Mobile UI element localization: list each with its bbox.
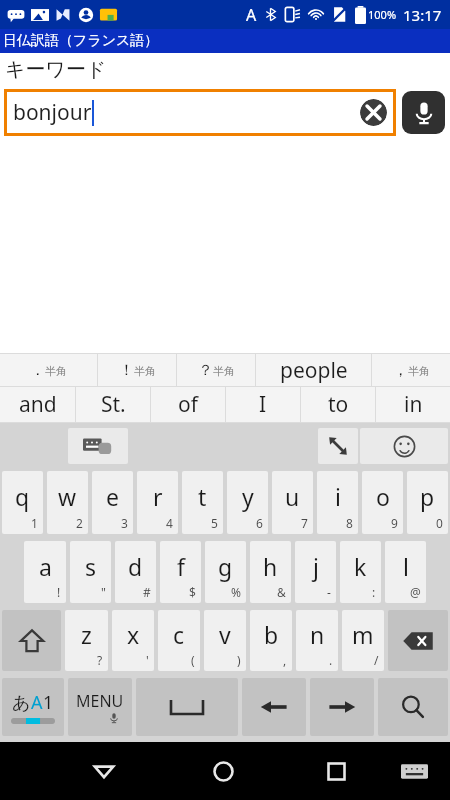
button[interactable]: h: [250, 541, 291, 603]
button[interactable]: i: [317, 471, 358, 534]
button[interactable]: and: [0, 387, 75, 422]
button[interactable]: q: [2, 471, 43, 534]
button[interactable]: s: [70, 541, 111, 603]
staticText: ！: [119, 361, 134, 380]
button[interactable]: Show keyboard: [394, 751, 434, 791]
staticText: u: [285, 481, 300, 512]
button[interactable]: e: [92, 471, 133, 534]
button[interactable]: o: [362, 471, 403, 534]
staticText: キーワード: [5, 57, 107, 82]
staticText: ，: [393, 361, 408, 380]
button[interactable]: n: [296, 610, 338, 671]
staticText: 1: [31, 515, 38, 531]
button[interactable]: I: [226, 387, 300, 422]
staticText: 8: [346, 515, 353, 531]
staticText: k: [354, 551, 367, 582]
staticText: 半角: [134, 364, 156, 378]
button[interactable]: m: [342, 610, 384, 671]
staticText: !: [57, 584, 61, 600]
staticText: ): [237, 652, 241, 668]
button[interactable]: Back: [82, 749, 126, 793]
staticText: y: [242, 481, 254, 512]
button[interactable]: f: [160, 541, 201, 603]
staticText: 0: [436, 515, 443, 531]
button[interactable]: Switch keyboard: [68, 428, 128, 464]
button[interactable]: in: [376, 387, 450, 422]
staticText: 7: [301, 515, 308, 531]
button[interactable]: Voice search: [402, 91, 445, 134]
button[interactable]: ，: [372, 354, 450, 386]
staticText: 13:17: [403, 5, 442, 25]
staticText: p: [420, 481, 435, 512]
button[interactable]: x: [112, 610, 154, 671]
staticText: 5: [211, 515, 218, 531]
staticText: 6: [256, 515, 263, 531]
staticText: ?: [97, 652, 103, 668]
staticText: 半角: [213, 364, 235, 378]
button[interactable]: k: [340, 541, 381, 603]
button[interactable]: St.: [76, 387, 150, 422]
staticText: MENU: [76, 690, 124, 712]
button[interactable]: Shift: [2, 610, 61, 671]
button[interactable]: r: [137, 471, 178, 534]
button[interactable]: d: [115, 541, 156, 603]
button[interactable]: c: [158, 610, 200, 671]
button[interactable]: Resize keyboard: [318, 428, 358, 464]
button[interactable]: ？: [177, 354, 255, 386]
button[interactable]: j: [295, 541, 336, 603]
staticText: j: [313, 551, 319, 582]
staticText: ,: [283, 652, 287, 668]
staticText: b: [264, 619, 279, 650]
staticText: 半角: [45, 364, 67, 378]
staticText: あ: [12, 692, 31, 715]
button[interactable]: of: [151, 387, 225, 422]
button[interactable]: Emoji: [360, 428, 448, 464]
staticText: #: [143, 584, 151, 600]
button[interactable]: people: [256, 354, 371, 386]
staticText: A: [246, 4, 257, 26]
button[interactable]: Input mode: [2, 678, 64, 736]
button[interactable]: Cursor left: [242, 678, 306, 736]
staticText: &: [277, 584, 286, 600]
button[interactable]: u: [272, 471, 313, 534]
staticText: e: [106, 481, 119, 512]
button[interactable]: t: [182, 471, 223, 534]
button[interactable]: MENU: [68, 678, 132, 736]
staticText: in: [404, 390, 423, 419]
staticText: f: [177, 551, 185, 582]
staticText: m: [352, 619, 374, 650]
button[interactable]: to: [301, 387, 375, 422]
staticText: 100%: [368, 7, 397, 22]
staticText: people: [280, 356, 348, 385]
staticText: o: [376, 481, 390, 512]
staticText: x: [127, 619, 140, 650]
button[interactable]: w: [47, 471, 88, 534]
button[interactable]: p: [407, 471, 448, 534]
staticText: z: [81, 619, 92, 650]
button[interactable]: z: [65, 610, 108, 671]
staticText: I: [259, 390, 267, 419]
staticText: g: [218, 551, 233, 582]
button[interactable]: ．: [0, 354, 97, 386]
button[interactable]: b: [250, 610, 292, 671]
staticText: n: [310, 619, 325, 650]
button[interactable]: Home: [201, 749, 245, 793]
staticText: ": [101, 584, 106, 600]
staticText: c: [173, 619, 185, 650]
button[interactable]: Space: [136, 678, 238, 736]
button[interactable]: Cursor right: [310, 678, 374, 736]
button[interactable]: y: [227, 471, 268, 534]
staticText: St.: [101, 390, 126, 419]
button[interactable]: Recent apps: [314, 749, 358, 793]
button[interactable]: Clear text: [360, 99, 387, 126]
button[interactable]: ！: [98, 354, 176, 386]
button[interactable]: Backspace: [388, 610, 448, 671]
button[interactable]: bonjour: [4, 89, 396, 136]
staticText: h: [263, 551, 278, 582]
button[interactable]: Search: [378, 678, 448, 736]
button[interactable]: g: [205, 541, 246, 603]
button[interactable]: a: [24, 541, 66, 603]
button[interactable]: l: [385, 541, 426, 603]
staticText: ．: [30, 361, 45, 380]
button[interactable]: v: [204, 610, 246, 671]
